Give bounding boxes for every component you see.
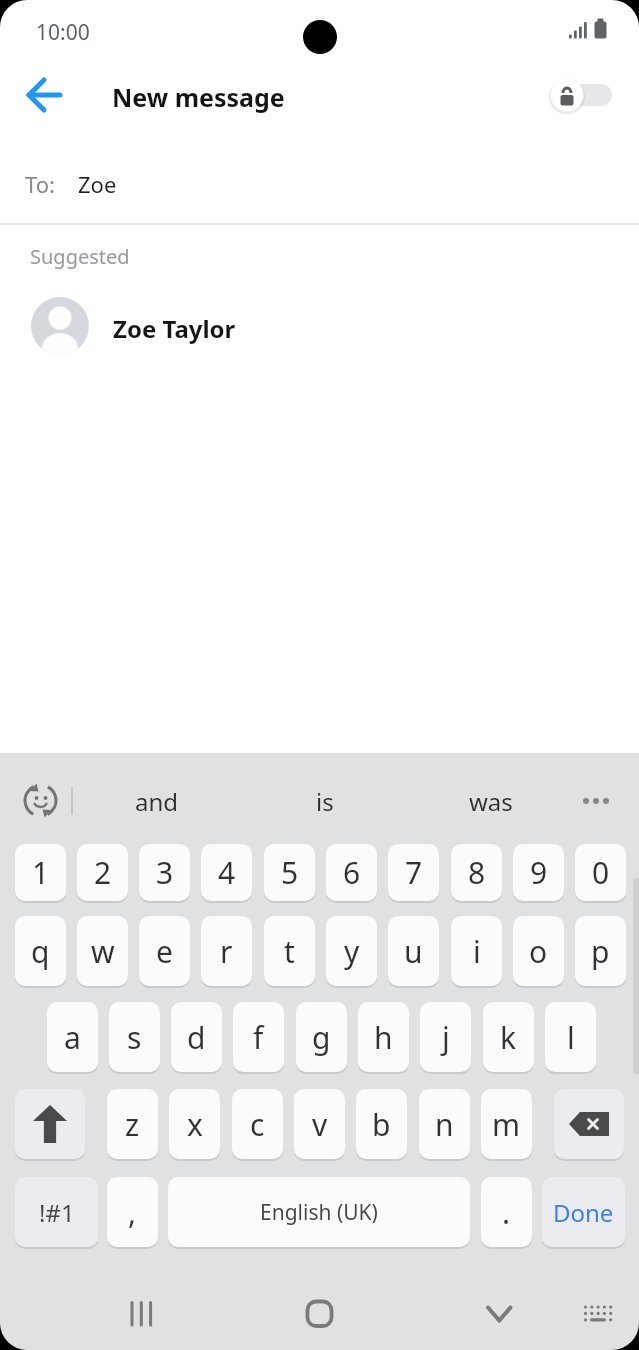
button[interactable]: l	[545, 1002, 596, 1072]
button[interactable]: and	[92, 758, 222, 844]
button[interactable]: .	[481, 1177, 532, 1247]
button[interactable]: e	[139, 916, 190, 986]
button[interactable]: j	[420, 1002, 471, 1072]
button[interactable]: Done	[542, 1177, 625, 1247]
button[interactable]: s	[109, 1002, 160, 1072]
button[interactable]: i	[451, 916, 502, 986]
button[interactable]: ,	[107, 1177, 158, 1247]
staticText: .	[502, 1192, 511, 1233]
staticText: Zoe	[78, 169, 117, 199]
staticText: m	[492, 1104, 521, 1145]
staticText: 0	[592, 852, 610, 893]
staticText: New message	[112, 80, 285, 114]
button[interactable]: x	[169, 1089, 220, 1159]
button[interactable]: 8	[451, 844, 502, 901]
staticText: 7	[405, 852, 423, 893]
button[interactable]	[15, 1089, 85, 1159]
button[interactable]: is	[260, 758, 390, 844]
button[interactable]: 0	[575, 844, 626, 901]
staticText: k	[500, 1017, 517, 1058]
staticText: 8	[468, 852, 486, 893]
button[interactable]: y	[326, 916, 377, 986]
staticText: 5	[281, 852, 299, 893]
staticText: To:	[25, 169, 55, 199]
staticText: x	[187, 1104, 203, 1145]
staticText: 3	[156, 852, 174, 893]
button[interactable]: was	[426, 758, 556, 844]
staticText: c	[250, 1104, 265, 1145]
staticText: Zoe Taylor	[113, 312, 236, 345]
staticText: j	[442, 1017, 450, 1058]
staticText: ,	[128, 1192, 137, 1233]
button[interactable]: c	[232, 1089, 283, 1159]
button[interactable]: h	[358, 1002, 409, 1072]
button[interactable]	[112, 1288, 172, 1340]
button[interactable]: 4	[201, 844, 252, 901]
button[interactable]: k	[483, 1002, 534, 1072]
button[interactable]: Zoe Taylor	[0, 290, 639, 362]
staticText: was	[469, 785, 513, 818]
button[interactable]	[18, 73, 64, 117]
button[interactable]: !#1	[15, 1177, 98, 1247]
staticText: s	[127, 1017, 142, 1058]
staticText: is	[316, 785, 334, 818]
button[interactable]: 6	[326, 844, 377, 901]
staticText: t	[284, 931, 295, 972]
staticText: h	[374, 1017, 393, 1058]
button[interactable]: 2	[77, 844, 128, 901]
button[interactable]: t	[264, 916, 315, 986]
staticText: 2	[94, 852, 112, 893]
staticText: n	[435, 1104, 454, 1145]
staticText: r	[220, 931, 233, 972]
button[interactable]: r	[201, 916, 252, 986]
staticText: p	[591, 931, 610, 972]
button[interactable]: u	[388, 916, 439, 986]
staticText: 9	[530, 852, 548, 893]
button[interactable]: 5	[264, 844, 315, 901]
staticText: i	[473, 931, 481, 972]
button[interactable]: o	[513, 916, 564, 986]
staticText: a	[64, 1017, 81, 1058]
button[interactable]: b	[356, 1089, 407, 1159]
button[interactable]: p	[575, 916, 626, 986]
staticText: l	[567, 1017, 575, 1058]
button[interactable]	[468, 1288, 528, 1340]
staticText: w	[91, 931, 115, 972]
staticText: 10:00	[36, 18, 90, 47]
button[interactable]: 3	[139, 844, 190, 901]
button[interactable]: v	[294, 1089, 345, 1159]
staticText: Done	[553, 1196, 614, 1229]
button[interactable]: a	[47, 1002, 98, 1072]
staticText: o	[529, 931, 548, 972]
button[interactable]: g	[296, 1002, 347, 1072]
button[interactable]: z	[107, 1089, 158, 1159]
staticText: and	[135, 785, 179, 818]
staticText: b	[372, 1104, 391, 1145]
staticText: f	[253, 1017, 264, 1058]
button[interactable]: n	[419, 1089, 470, 1159]
button[interactable]: q	[15, 916, 66, 986]
button[interactable]: 9	[513, 844, 564, 901]
button[interactable]: 7	[388, 844, 439, 901]
staticText: z	[125, 1104, 140, 1145]
staticText: u	[404, 931, 423, 972]
button[interactable]	[544, 72, 620, 118]
staticText: d	[187, 1017, 206, 1058]
staticText: 4	[218, 852, 236, 893]
staticText: v	[312, 1104, 328, 1145]
button[interactable]	[290, 1288, 350, 1340]
button[interactable]: f	[233, 1002, 284, 1072]
staticText: e	[156, 931, 173, 972]
button[interactable]: 1	[15, 844, 66, 901]
staticText: g	[312, 1017, 331, 1058]
staticText: English (UK)	[260, 1198, 378, 1227]
button[interactable]	[554, 1089, 624, 1159]
button[interactable]: English (UK)	[168, 1177, 470, 1247]
staticText: !#1	[39, 1196, 75, 1229]
button[interactable]: m	[481, 1089, 532, 1159]
staticText: 1	[32, 852, 50, 893]
button[interactable]: w	[77, 916, 128, 986]
staticText: q	[31, 931, 50, 972]
staticText: Suggested	[30, 243, 130, 270]
button[interactable]: d	[171, 1002, 222, 1072]
